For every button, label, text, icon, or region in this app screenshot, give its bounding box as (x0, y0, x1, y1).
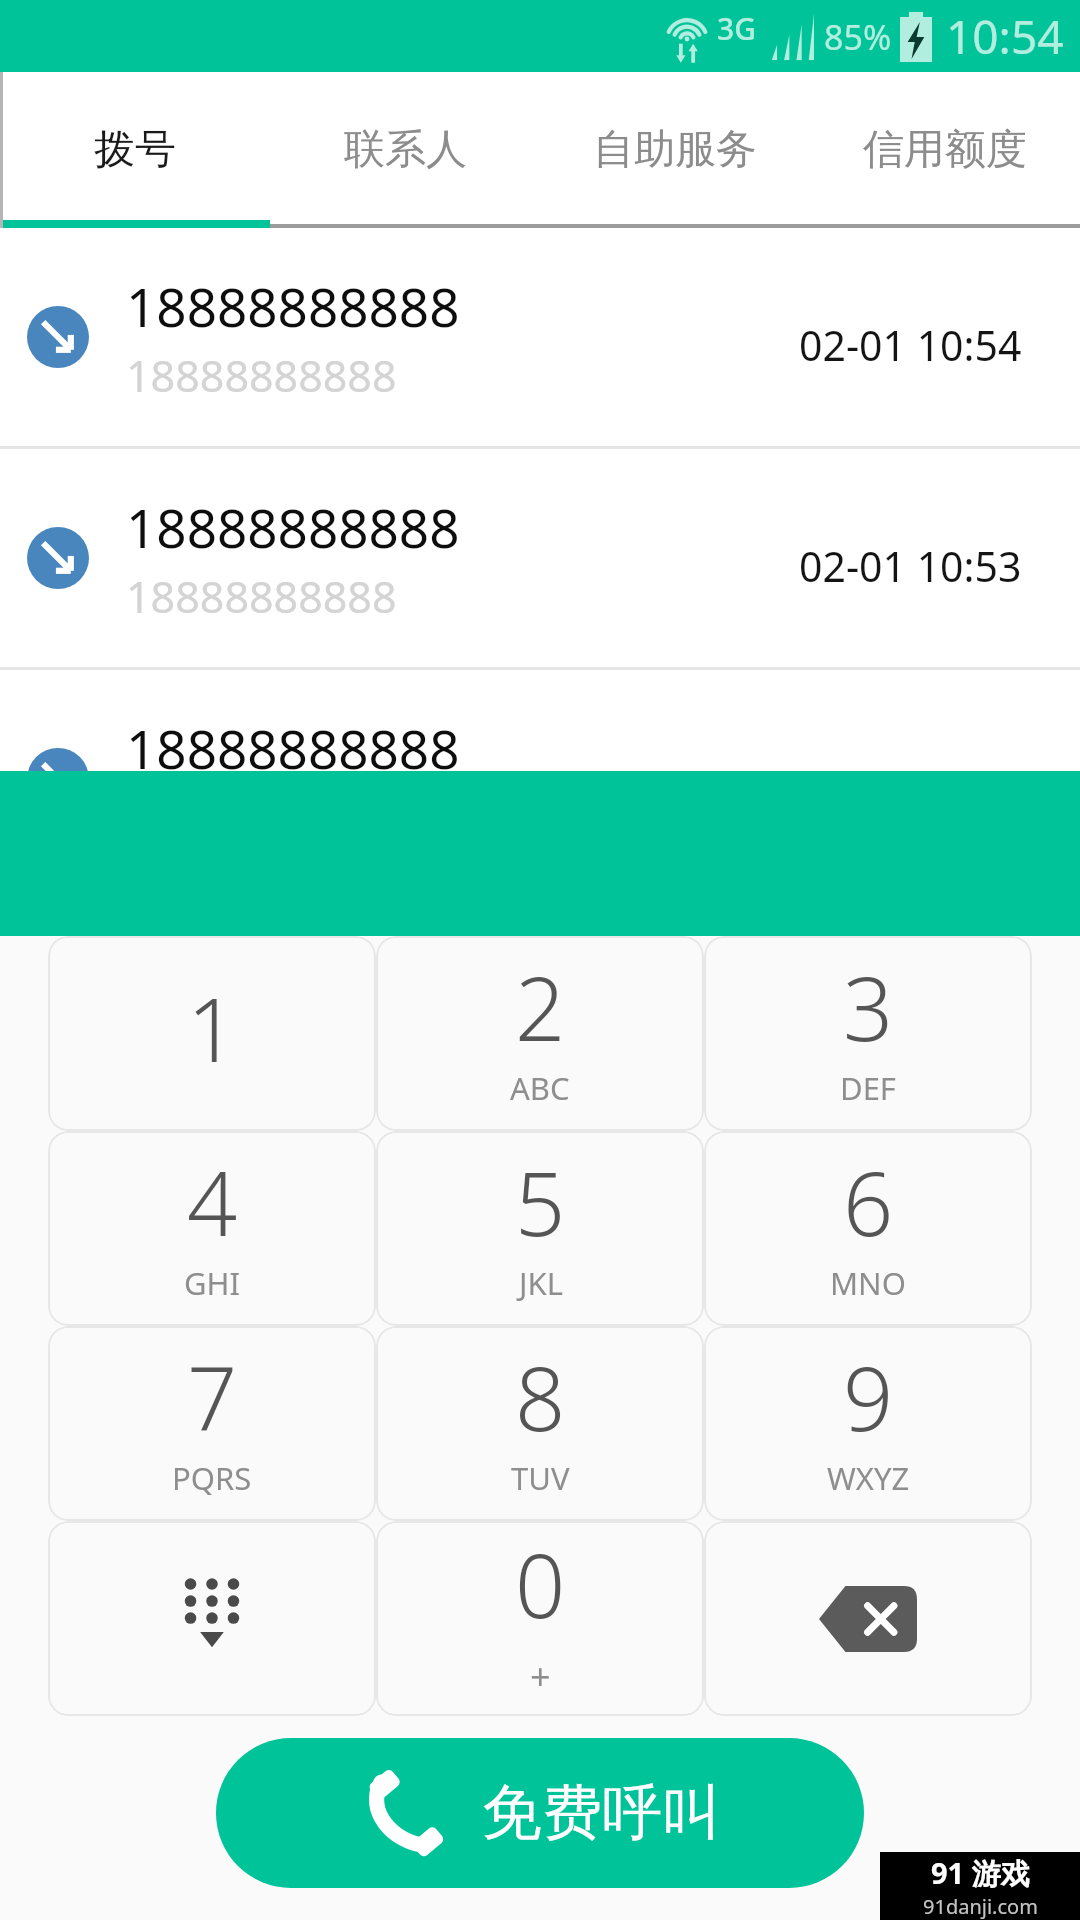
staticText: 6 (843, 1142, 894, 1262)
staticText: 18888888888 (126, 567, 397, 626)
staticText: 自助服务 (593, 124, 757, 176)
staticText: 免费呼叫 (482, 1775, 722, 1851)
button[interactable]: 7 (48, 1326, 376, 1521)
staticText: 9 (843, 1337, 894, 1457)
staticText: 3 (843, 947, 894, 1067)
staticText: 7 (187, 1337, 238, 1457)
staticText: 02-01 10:52 (799, 759, 1022, 815)
staticText: 联系人 (344, 124, 467, 176)
staticText: 91danji.com (923, 1893, 1038, 1920)
staticText: 02-01 10:53 (799, 538, 1022, 594)
staticText: 2 (515, 947, 566, 1067)
staticText: 8 (515, 1337, 566, 1457)
button[interactable]: 2 (376, 936, 704, 1131)
button[interactable]: 8 (376, 1326, 704, 1521)
staticText: 5 (515, 1142, 566, 1262)
staticText: JKL (519, 1262, 563, 1304)
staticText: 10:54 (946, 5, 1064, 68)
staticText: 1 (187, 968, 238, 1088)
button[interactable]: 4 (48, 1131, 376, 1326)
staticText: 0 (515, 1524, 566, 1644)
staticText: 85% (824, 14, 892, 60)
button[interactable]: 信用额度 (810, 72, 1080, 228)
staticText: WXYZ (827, 1457, 910, 1499)
staticText: 3G (717, 8, 756, 49)
staticText: 18888888888 (126, 712, 460, 784)
staticText: 02-01 10:54 (799, 317, 1022, 373)
button[interactable]: Incoming call (0, 449, 1080, 667)
staticText: TUV (511, 1457, 570, 1499)
button[interactable]: Incoming call (0, 228, 1080, 446)
other: Incoming call (27, 527, 89, 589)
button[interactable]: 3 (704, 936, 1032, 1131)
staticText: 4 (187, 1142, 238, 1262)
staticText: PQRS (172, 1457, 252, 1499)
staticText: 信用额度 (863, 124, 1027, 176)
button[interactable]: 联系人 (270, 72, 540, 228)
other: Incoming call (27, 306, 89, 368)
staticText: MNO (830, 1262, 906, 1304)
button[interactable]: 拨号 (0, 72, 270, 228)
button[interactable]: 自助服务 (540, 72, 810, 228)
staticText: 18888888888 (126, 346, 397, 405)
button[interactable]: Incoming call (0, 670, 1080, 888)
staticText: ABC (510, 1067, 570, 1109)
staticText: + (530, 1652, 551, 1701)
button[interactable]: Backspace (704, 1521, 1032, 1716)
staticText: 91 游戏 (931, 1853, 1030, 1893)
other: Incoming call (27, 748, 89, 810)
staticText: 拨号 (94, 124, 176, 176)
button[interactable]: 1 (48, 936, 376, 1131)
staticText: 18888888888 (126, 270, 460, 342)
button[interactable]: 免费呼叫 (216, 1738, 864, 1888)
button[interactable]: 0 (376, 1521, 704, 1716)
button[interactable]: Hide dialpad (48, 1521, 376, 1716)
button[interactable]: 9 (704, 1326, 1032, 1521)
button[interactable]: 5 (376, 1131, 704, 1326)
button[interactable]: 6 (704, 1131, 1032, 1326)
staticText: DEF (840, 1067, 896, 1109)
staticText: GHI (184, 1262, 241, 1304)
staticText: 18888888888 (126, 491, 460, 563)
